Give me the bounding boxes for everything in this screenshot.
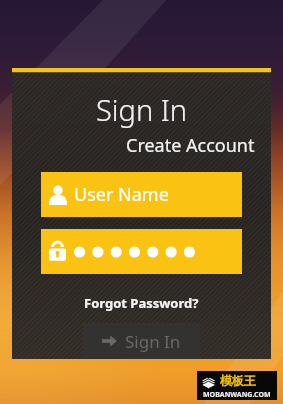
button[interactable]: Sign In: [83, 323, 200, 359]
staticText: User Name: [74, 182, 169, 207]
staticText: Sign In: [12, 90, 271, 129]
button[interactable]: Create Account: [126, 133, 255, 158]
button[interactable]: User Name: [41, 172, 242, 217]
staticText: 模板王: [220, 373, 256, 388]
button[interactable]: Password: [41, 229, 242, 274]
staticText: Sign In: [125, 330, 181, 353]
button[interactable]: Forgot Password?: [84, 294, 199, 312]
staticText: MOBANWANG.COM: [203, 390, 271, 400]
